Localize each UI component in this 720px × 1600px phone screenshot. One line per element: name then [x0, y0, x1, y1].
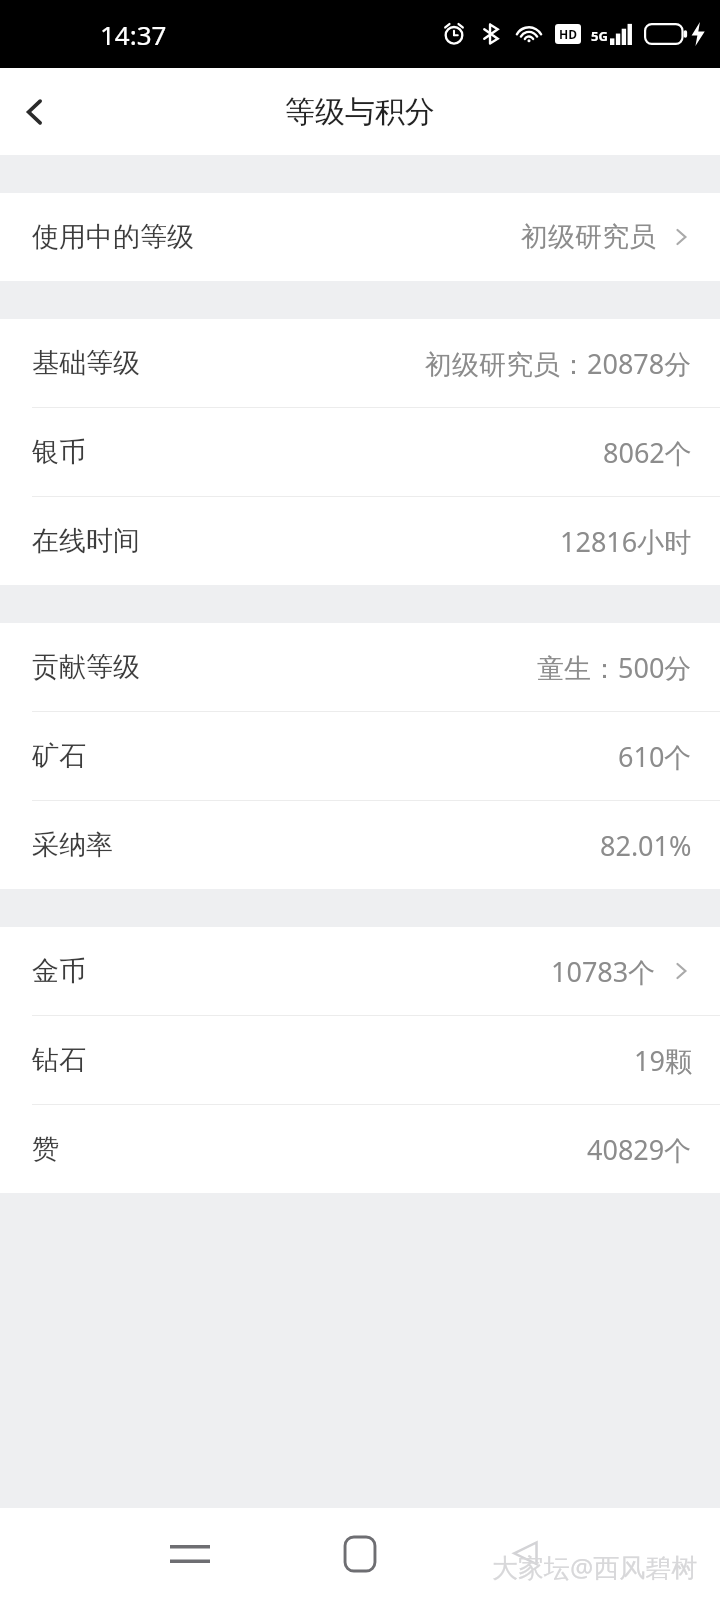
staticText: 采纳率 — [32, 828, 113, 862]
staticText: 10783个 — [551, 953, 656, 990]
button[interactable]: 银币 — [0, 408, 720, 496]
button[interactable]: 采纳率 — [0, 801, 720, 889]
staticText: 19颗 — [634, 1042, 692, 1079]
button[interactable]: 赞 — [0, 1105, 720, 1193]
staticText: 初级研究员：20878分 — [425, 345, 692, 382]
staticText: 82.01% — [600, 827, 692, 864]
button[interactable]: 基础等级 — [0, 319, 720, 407]
staticText: 基础等级 — [32, 346, 140, 380]
button[interactable]: 返回 — [0, 77, 70, 147]
staticText: 银币 — [32, 435, 86, 469]
staticText: 12816小时 — [560, 523, 692, 560]
staticText: 在线时间 — [32, 524, 140, 558]
staticText: 初级研究员 — [521, 220, 656, 254]
button[interactable]: 金币 — [0, 927, 720, 1015]
button[interactable]: 最近任务 — [155, 1519, 225, 1589]
button[interactable]: 钻石 — [0, 1016, 720, 1104]
button[interactable]: 返回 — [490, 1519, 560, 1589]
button[interactable]: 矿石 — [0, 712, 720, 800]
staticText: 贡献等级 — [32, 650, 140, 684]
staticText: 8062个 — [603, 434, 692, 471]
staticText: 等级与积分 — [0, 93, 720, 131]
staticText: HD — [559, 26, 577, 42]
staticText: 钻石 — [32, 1043, 86, 1077]
button[interactable]: 贡献等级 — [0, 623, 720, 711]
button[interactable]: 主屏幕 — [325, 1519, 395, 1589]
staticText: 金币 — [32, 954, 86, 988]
button[interactable]: 使用中的等级 — [0, 193, 720, 281]
staticText: 大家坛@西风碧树 — [492, 1549, 698, 1585]
staticText: 5G — [591, 27, 608, 45]
staticText: 40829个 — [587, 1131, 692, 1168]
staticText: 610个 — [618, 738, 692, 775]
staticText: 14:37 — [100, 17, 167, 52]
staticText: 矿石 — [32, 739, 86, 773]
staticText: 赞 — [32, 1132, 59, 1166]
staticText: 使用中的等级 — [32, 220, 194, 254]
staticText: 童生：500分 — [537, 649, 692, 686]
button[interactable]: 在线时间 — [0, 497, 720, 585]
